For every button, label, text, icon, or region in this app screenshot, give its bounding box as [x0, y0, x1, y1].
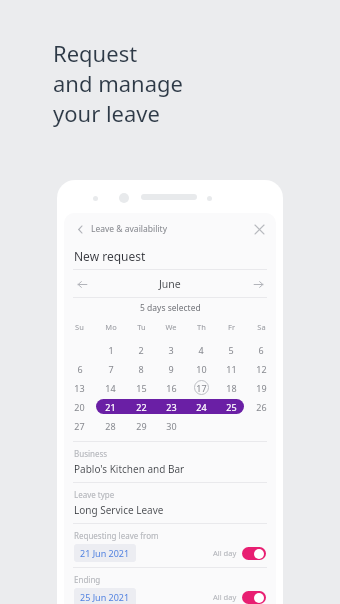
staticText: All day — [213, 592, 237, 602]
staticText: 12 — [256, 363, 267, 375]
staticText: Business — [74, 448, 108, 459]
staticText: 9 — [168, 363, 174, 375]
button[interactable]: Back — [72, 221, 88, 237]
staticText: 28 — [105, 420, 116, 432]
staticText: 8 — [138, 363, 144, 375]
staticText: 17 — [196, 382, 207, 394]
staticText: 7 — [108, 363, 114, 375]
staticText: Requesting leave from — [74, 530, 159, 541]
staticText: 21 Jun 2021 — [80, 547, 130, 559]
button[interactable]: Previous month — [74, 276, 90, 292]
staticText: 29 — [136, 420, 147, 432]
staticText: 25 Jun 2021 — [80, 591, 130, 603]
staticText: Su — [75, 322, 84, 332]
button[interactable]: 17 — [194, 380, 209, 395]
staticText: Pablo's Kitchen and Bar — [74, 462, 185, 476]
staticText: 20 — [74, 401, 85, 413]
staticText: Leave & availability — [91, 223, 167, 235]
staticText: Th — [197, 322, 206, 332]
staticText: Ending — [74, 574, 101, 585]
staticText: 4 — [198, 344, 204, 356]
staticText: 24 — [196, 401, 207, 413]
staticText: 10 — [196, 363, 207, 375]
staticText: 2 — [138, 344, 144, 356]
staticText: 21 — [105, 401, 116, 413]
staticText: 1 — [108, 344, 114, 356]
staticText: 27 — [74, 420, 85, 432]
staticText: 5 — [228, 344, 234, 356]
button[interactable]: Leave type — [64, 483, 276, 523]
button[interactable]: Business — [64, 442, 276, 482]
button[interactable] — [96, 399, 244, 414]
staticText: Request — [53, 38, 138, 68]
staticText: We — [165, 322, 177, 332]
staticText: 22 — [136, 401, 147, 413]
staticText: 3 — [168, 344, 174, 356]
staticText: Leave type — [74, 489, 115, 500]
staticText: Sa — [257, 322, 266, 332]
button[interactable]: 21 Jun 2021 — [74, 544, 136, 562]
staticText: 5 days selected — [140, 302, 201, 314]
staticText: 13 — [74, 382, 85, 394]
staticText: 30 — [166, 420, 177, 432]
staticText: Long Service Leave — [74, 503, 164, 517]
staticText: 26 — [256, 401, 267, 413]
staticText: Tu — [137, 322, 146, 332]
staticText: June — [159, 277, 181, 291]
staticText: and manage — [53, 68, 183, 98]
staticText: All day — [213, 548, 237, 558]
staticText: 15 — [136, 382, 147, 394]
staticText: Mo — [105, 322, 117, 332]
staticText: New request — [74, 248, 146, 264]
staticText: Fr — [228, 322, 235, 332]
button[interactable]: Close — [250, 220, 268, 238]
button[interactable] — [242, 547, 266, 560]
staticText: 6 — [77, 363, 83, 375]
staticText: 16 — [166, 382, 177, 394]
staticText: 23 — [166, 401, 177, 413]
staticText: 11 — [226, 363, 237, 375]
button[interactable]: 25 Jun 2021 — [74, 588, 136, 604]
button[interactable]: Next month — [250, 276, 266, 292]
staticText: 6 — [258, 344, 264, 356]
button[interactable] — [242, 591, 266, 604]
staticText: 25 — [226, 401, 237, 413]
staticText: your leave — [53, 98, 160, 128]
staticText: 14 — [105, 382, 116, 394]
staticText: 19 — [256, 382, 267, 394]
staticText: 18 — [226, 382, 237, 394]
